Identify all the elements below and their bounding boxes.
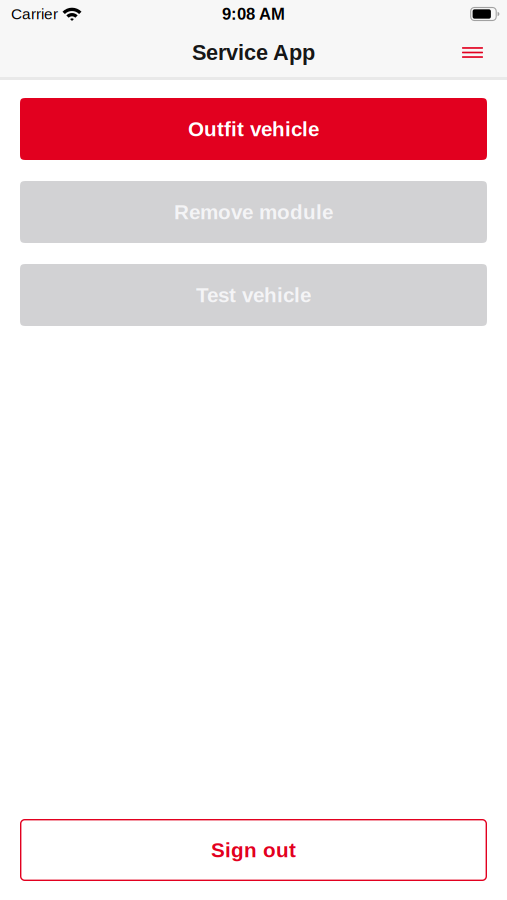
button[interactable]: Sign out xyxy=(20,819,487,881)
staticText: Test vehicle xyxy=(196,283,311,307)
staticText: Sign out xyxy=(211,838,296,862)
staticText: Service App xyxy=(192,40,315,65)
staticText: 9:08 AM xyxy=(222,5,285,23)
button[interactable]: Outfit vehicle xyxy=(20,98,487,160)
button[interactable]: Test vehicle xyxy=(20,264,487,326)
button[interactable]: Menu xyxy=(450,30,494,74)
staticText: Remove module xyxy=(174,200,333,224)
button[interactable]: Remove module xyxy=(20,181,487,243)
staticText: Outfit vehicle xyxy=(188,117,319,141)
staticText: Carrier xyxy=(11,5,58,22)
